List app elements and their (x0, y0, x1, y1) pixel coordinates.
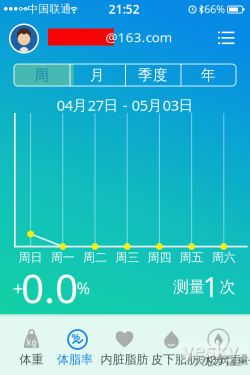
staticText: 周日 (19, 250, 43, 265)
staticText: 周五 (180, 250, 204, 265)
button[interactable]: 月 (69, 64, 125, 86)
button[interactable]: % (51, 314, 99, 375)
staticText: 1 (202, 268, 218, 305)
staticText: % (71, 330, 79, 343)
staticText: 水分含量 (201, 352, 249, 367)
button[interactable]: 皮下脂肪 (150, 314, 198, 375)
staticText: @163.com (105, 28, 171, 46)
staticText: 0.0 (21, 261, 78, 314)
button[interactable]: kg (7, 314, 55, 375)
staticText: 66% (204, 2, 225, 16)
button[interactable]: @163.com (0, 20, 200, 57)
staticText: + (12, 276, 23, 300)
staticText: % (76, 277, 89, 299)
staticText: 中国联通 (27, 2, 71, 15)
button[interactable]: 年 (180, 64, 236, 86)
staticText: 天极网重··· (193, 352, 250, 368)
staticText: 21:52 (108, 1, 139, 17)
staticText: 次 (219, 277, 235, 297)
staticText: 周 (34, 66, 49, 84)
button[interactable]: 季度 (125, 64, 180, 86)
staticText: kg (26, 337, 36, 348)
staticText: 04月27日 - 05月03日 (56, 95, 193, 115)
staticText: 月 (90, 66, 105, 84)
staticText: 周六 (212, 250, 236, 265)
staticText: 年 (201, 66, 216, 84)
staticText: yesky. (182, 337, 244, 364)
staticText: 周三 (115, 250, 139, 265)
button[interactable]: 水分含量 (196, 314, 244, 375)
button[interactable]: Menu (211, 23, 241, 53)
staticText: 皮下脂肪 (151, 352, 199, 367)
staticText: 周一 (51, 250, 75, 265)
staticText: 体重 (19, 352, 43, 367)
staticText: 内脏脂肪 (100, 352, 148, 367)
button[interactable]: 内脏脂肪 (100, 314, 148, 375)
staticText: 周二 (83, 250, 107, 265)
staticText: 测量 (173, 277, 205, 297)
staticText: yesky. (181, 336, 243, 363)
button[interactable]: 周 (14, 64, 69, 86)
staticText: 周四 (147, 250, 171, 265)
staticText: 体脂率 (57, 352, 93, 367)
staticText: 季度 (138, 66, 168, 84)
